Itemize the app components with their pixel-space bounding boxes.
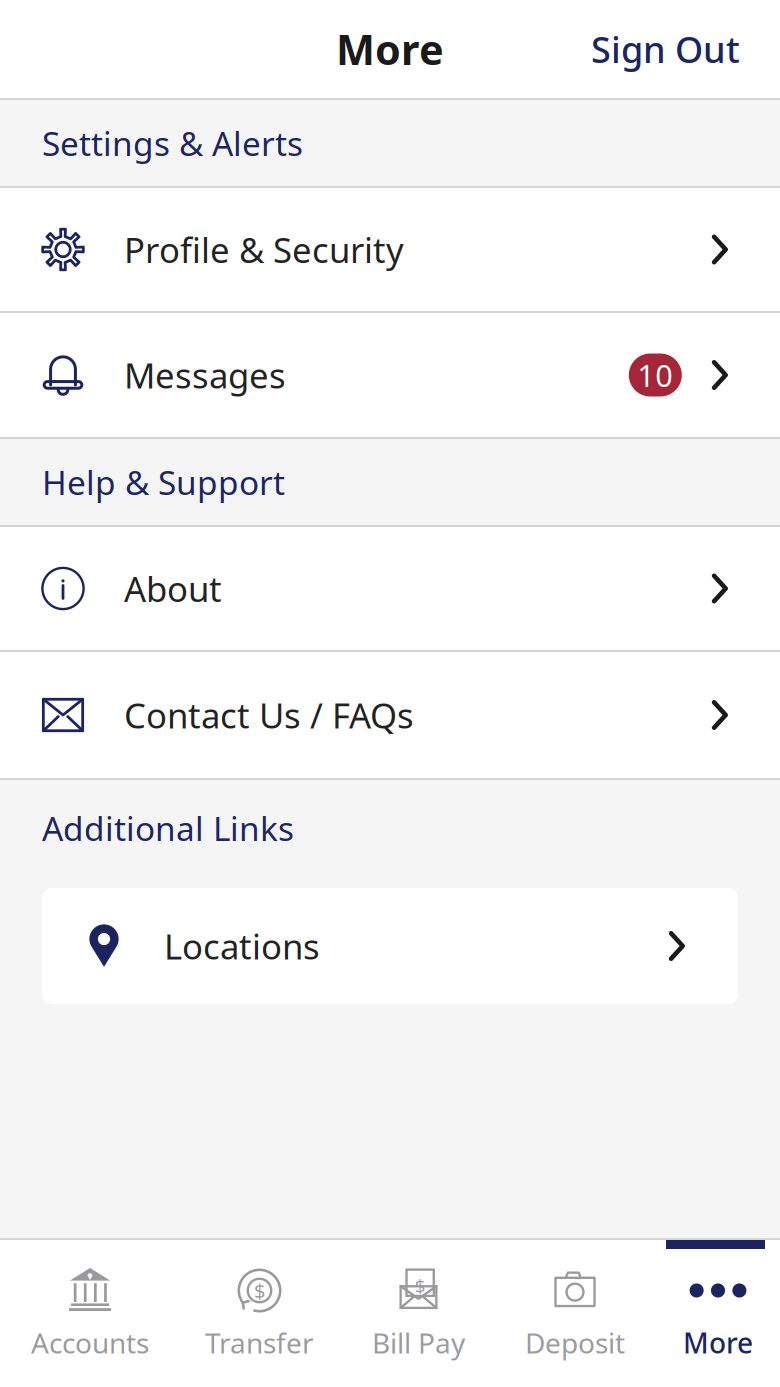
staticText: Sign Out <box>591 25 740 73</box>
staticText: More <box>683 1324 753 1361</box>
staticText: Accounts <box>31 1324 149 1361</box>
staticText: Profile & Security <box>124 226 404 272</box>
staticText: $ <box>415 1273 426 1298</box>
button[interactable]: More <box>654 1240 780 1387</box>
staticText: Additional Links <box>42 806 294 850</box>
staticText: 10 <box>637 355 673 395</box>
staticText: Help & Support <box>42 460 285 504</box>
button[interactable]: About <box>0 527 780 650</box>
button[interactable]: Deposit <box>496 1240 654 1387</box>
staticText: $ <box>254 1277 265 1304</box>
button[interactable]: Sign Out <box>581 17 750 81</box>
staticText: Contact Us / FAQs <box>124 692 414 738</box>
staticText: About <box>124 565 222 611</box>
staticText: Messages <box>124 352 286 398</box>
staticText: Settings & Alerts <box>42 121 303 165</box>
button[interactable]: Accounts <box>2 1240 178 1387</box>
button[interactable]: $ <box>341 1240 496 1387</box>
staticText: Deposit <box>525 1324 625 1361</box>
staticText: More <box>336 22 444 76</box>
staticText: Locations <box>164 923 320 969</box>
staticText: Bill Pay <box>372 1324 465 1361</box>
button[interactable]: Profile & Security <box>0 188 780 311</box>
staticText: Transfer <box>205 1324 314 1361</box>
button[interactable]: Locations <box>42 888 738 1004</box>
button[interactable]: $ <box>178 1240 341 1387</box>
button[interactable]: Messages <box>0 313 780 437</box>
button[interactable]: Contact Us / FAQs <box>0 652 780 778</box>
